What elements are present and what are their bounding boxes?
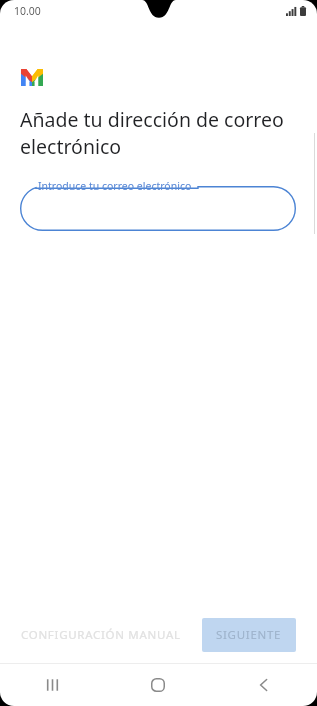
staticText: Introduce tu correo electrónico [38, 179, 192, 193]
button[interactable]: Home [105, 664, 211, 706]
staticText: SIGUIENTE [216, 627, 282, 643]
staticText: CONFIGURACIÓN MANUAL [21, 627, 181, 643]
button[interactable]: Recent apps [0, 664, 105, 706]
staticText: 10.00 [14, 4, 41, 18]
staticText: Añade tu dirección de correo electrónico [20, 106, 295, 160]
button[interactable]: Back [211, 664, 317, 706]
button[interactable]: Introduce tu correo electrónico [20, 179, 296, 231]
button[interactable]: SIGUIENTE [202, 618, 296, 652]
other: Gmail [21, 69, 43, 86]
button[interactable]: CONFIGURACIÓN MANUAL [10, 618, 192, 652]
